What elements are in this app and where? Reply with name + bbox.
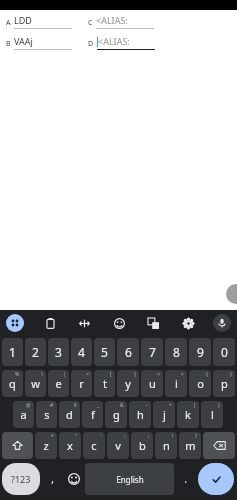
- staticText: j: [163, 407, 166, 422]
- button[interactable]: Emoji: [110, 314, 128, 332]
- button[interactable]: ?123: [2, 463, 40, 495]
- staticText: =: [86, 371, 89, 378]
- staticText: _: [97, 402, 100, 409]
- staticText: l: [211, 407, 214, 422]
- button[interactable]: 3: [48, 338, 69, 366]
- button[interactable]: ,: [42, 463, 62, 495]
- button[interactable]: f: [82, 401, 103, 428]
- staticText: \: [41, 371, 43, 378]
- button[interactable]: Enter: [198, 463, 234, 495]
- button[interactable]: C: [88, 14, 168, 29]
- staticText: ': [100, 433, 102, 440]
- button[interactable]: 1: [2, 338, 23, 366]
- staticText: !: [172, 433, 174, 440]
- button[interactable]: g: [105, 401, 127, 428]
- staticText: |: [63, 371, 66, 378]
- staticText: u: [149, 376, 156, 391]
- staticText: :: [124, 433, 126, 440]
- button[interactable]: English: [85, 463, 174, 495]
- button[interactable]: 5: [94, 338, 115, 366]
- staticText: {: [206, 371, 208, 378]
- button[interactable]: k: [177, 401, 199, 428]
- staticText: z: [43, 438, 49, 453]
- button[interactable]: Floating action: [226, 284, 237, 304]
- staticText: A: [6, 18, 11, 28]
- button[interactable]: r: [71, 370, 92, 397]
- button[interactable]: u: [141, 370, 163, 397]
- staticText: @: [26, 402, 31, 409]
- staticText: 4: [78, 344, 85, 360]
- staticText: r: [79, 376, 84, 391]
- staticText: 1: [9, 344, 16, 360]
- staticText: x: [67, 438, 73, 453]
- button[interactable]: .: [176, 463, 195, 495]
- staticText: ;: [148, 433, 150, 440]
- staticText: t: [103, 376, 107, 391]
- staticText: 5: [101, 344, 108, 360]
- staticText: a: [20, 407, 27, 422]
- staticText: e: [55, 376, 62, 391]
- staticText: D: [88, 39, 94, 49]
- staticText: m: [185, 438, 196, 453]
- staticText: ?: [195, 433, 198, 440]
- button[interactable]: Shift: [2, 432, 33, 459]
- button[interactable]: b: [131, 432, 153, 459]
- button[interactable]: 2: [25, 338, 46, 366]
- staticText: English: [116, 474, 144, 485]
- staticText: 3: [55, 344, 62, 360]
- staticText: LDD: [14, 14, 32, 26]
- staticText: }: [230, 371, 232, 378]
- button[interactable]: m: [179, 432, 201, 459]
- button[interactable]: Voice input: [213, 314, 231, 332]
- button[interactable]: n: [155, 432, 177, 459]
- staticText: <: [157, 371, 160, 378]
- button[interactable]: Apps: [6, 314, 24, 332]
- button[interactable]: q: [2, 370, 23, 397]
- button[interactable]: 9: [189, 338, 211, 366]
- button[interactable]: o: [189, 370, 211, 397]
- staticText: <ALIAS:: [98, 35, 130, 47]
- button[interactable]: D: [88, 35, 168, 50]
- staticText: c: [91, 438, 97, 453]
- button[interactable]: l: [201, 401, 223, 428]
- button[interactable]: v: [107, 432, 129, 459]
- button[interactable]: e: [48, 370, 69, 397]
- staticText: .: [184, 472, 187, 486]
- button[interactable]: B: [6, 35, 86, 50]
- staticText: >: [181, 371, 184, 378]
- button[interactable]: Backspace: [203, 432, 235, 459]
- button[interactable]: Text editing: [75, 314, 93, 332]
- button[interactable]: A: [6, 14, 86, 29]
- button[interactable]: j: [153, 401, 175, 428]
- button[interactable]: 6: [117, 338, 139, 366]
- button[interactable]: Clipboard: [41, 314, 59, 332]
- button[interactable]: 0: [213, 338, 235, 366]
- button[interactable]: y: [117, 370, 139, 397]
- button[interactable]: t: [94, 370, 115, 397]
- staticText: €: [74, 402, 77, 409]
- button[interactable]: w: [25, 370, 46, 397]
- button[interactable]: Emoji: [63, 461, 84, 497]
- button[interactable]: a: [13, 401, 34, 428]
- staticText: b: [139, 438, 146, 453]
- button[interactable]: Settings: [179, 314, 197, 332]
- staticText: ": [75, 433, 78, 440]
- button[interactable]: d: [59, 401, 80, 428]
- button[interactable]: 8: [165, 338, 187, 366]
- button[interactable]: h: [129, 401, 151, 428]
- staticText: n: [163, 438, 170, 453]
- button[interactable]: c: [83, 432, 105, 459]
- staticText: 0: [221, 344, 228, 360]
- button[interactable]: 7: [141, 338, 163, 366]
- staticText: C: [88, 18, 93, 28]
- button[interactable]: s: [36, 401, 57, 428]
- staticText: %: [15, 371, 20, 378]
- button[interactable]: 4: [71, 338, 92, 366]
- button[interactable]: i: [165, 370, 187, 397]
- staticText: p: [221, 376, 228, 391]
- button[interactable]: x: [59, 432, 81, 459]
- button[interactable]: p: [213, 370, 235, 397]
- button[interactable]: Translate: [144, 314, 162, 332]
- button[interactable]: z: [35, 432, 57, 459]
- staticText: (: [194, 402, 196, 409]
